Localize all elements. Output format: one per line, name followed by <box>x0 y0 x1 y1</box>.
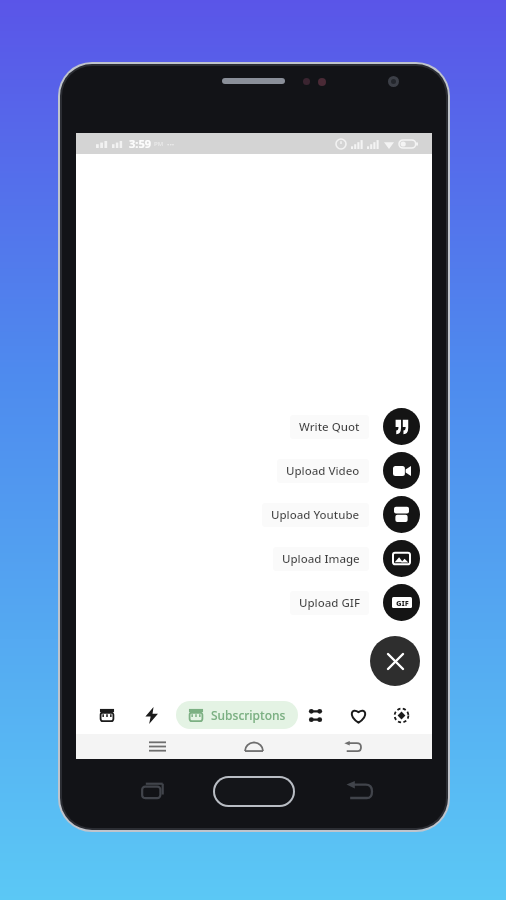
button[interactable]: Upload GIF <box>290 584 420 621</box>
button[interactable]: Subscriptons <box>176 701 298 729</box>
staticText: Upload Image <box>282 551 360 567</box>
button[interactable]: Recents <box>140 734 174 759</box>
staticText: Upload Video <box>286 463 360 479</box>
button[interactable]: Favorites <box>343 700 373 730</box>
staticText: ··· <box>167 138 175 150</box>
button[interactable]: Categories <box>300 700 330 730</box>
staticText: Write Quot <box>299 419 360 435</box>
staticText: PM <box>154 140 164 148</box>
button[interactable]: Discover <box>386 700 416 730</box>
button[interactable]: Write Quot <box>290 408 420 445</box>
staticText: Subscriptons <box>211 707 286 723</box>
button[interactable]: Home <box>237 734 271 759</box>
button[interactable]: Upload Youtube <box>262 496 420 533</box>
button[interactable]: Flash <box>136 700 166 730</box>
button[interactable]: Upload Image <box>273 540 420 577</box>
staticText: Upload GIF <box>299 595 360 611</box>
button[interactable]: Store <box>92 700 122 730</box>
button[interactable]: Close menu <box>370 636 420 686</box>
staticText: GIF <box>396 598 409 608</box>
button[interactable]: Upload Video <box>277 452 420 489</box>
button[interactable]: Back <box>335 734 369 759</box>
staticText: 3:59 <box>129 136 151 151</box>
staticText: Upload Youtube <box>271 507 360 523</box>
